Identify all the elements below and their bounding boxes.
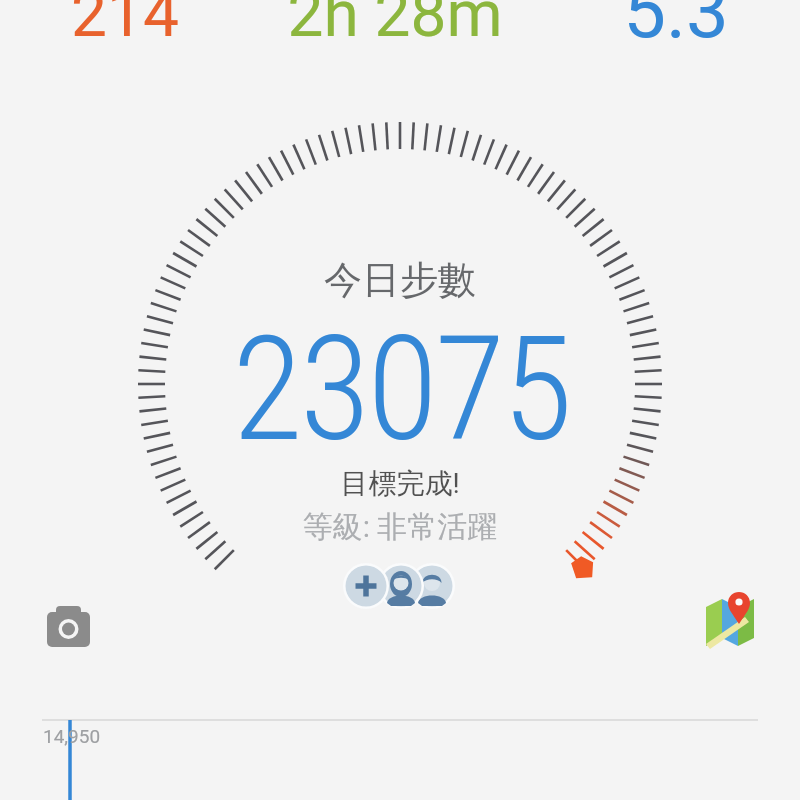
button[interactable] (341, 561, 456, 611)
staticText: 今日步數 (0, 256, 800, 304)
staticText: 23075 (1, 304, 800, 474)
staticText: 214 (0, 0, 275, 52)
staticText: 目標完成! (0, 466, 800, 501)
button[interactable] (40, 600, 96, 656)
staticText: 5.3 (526, 0, 800, 55)
staticText: 2h 28m (245, 0, 545, 52)
button[interactable] (250, 234, 550, 544)
staticText: 等級: 非常活躍 (0, 508, 800, 546)
button[interactable] (698, 590, 762, 654)
staticText: 14,950 (43, 725, 101, 747)
